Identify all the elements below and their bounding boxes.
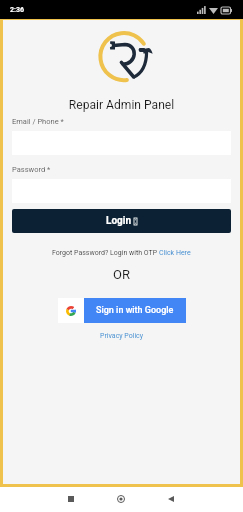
staticText: Password * <box>12 165 51 174</box>
button[interactable]: Login <box>12 209 231 233</box>
staticText: OR <box>3 267 240 282</box>
staticText: Forgot Password? Login with OTP <box>52 249 159 257</box>
button[interactable]: Back <box>163 491 179 507</box>
button[interactable]: Recents <box>63 491 79 507</box>
staticText: 2:36 <box>10 6 25 14</box>
staticText: Repair Admin Panel <box>3 98 240 112</box>
staticText: Login <box>106 215 132 227</box>
button[interactable]: Home <box>113 491 129 507</box>
staticText: Sign in with Google <box>96 305 174 316</box>
button[interactable]: Sign in with Google <box>58 298 186 323</box>
staticText: Click Here <box>159 249 191 257</box>
button[interactable]: Click Here <box>159 249 191 257</box>
staticText: Privacy Policy <box>100 332 144 340</box>
staticText: Email / Phone * <box>12 117 64 126</box>
button[interactable]: Privacy Policy <box>100 332 144 340</box>
